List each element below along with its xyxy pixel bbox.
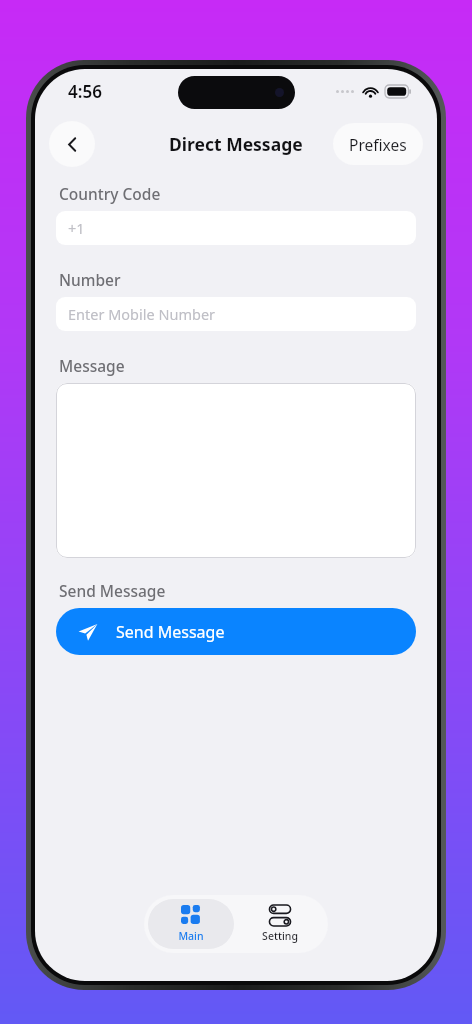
button[interactable]: Setting (238, 899, 322, 949)
button[interactable]: Main (148, 899, 234, 949)
staticText: Send Message (116, 621, 225, 643)
staticText: Number (59, 269, 121, 290)
staticText: Send Message (59, 580, 166, 601)
button[interactable]: Enter Mobile Number (56, 297, 416, 331)
staticText: +1 (68, 218, 85, 238)
staticText: Main (178, 929, 204, 943)
staticText: Prefixes (349, 134, 407, 155)
staticText: Setting (262, 929, 298, 943)
button[interactable] (56, 383, 416, 558)
button[interactable]: Prefixes (333, 123, 423, 165)
staticText: Message (59, 355, 125, 376)
staticText: Country Code (59, 183, 161, 204)
button[interactable]: Send Message (56, 608, 416, 655)
staticText: 4:56 (68, 80, 102, 103)
staticText: Enter Mobile Number (68, 304, 216, 324)
button[interactable]: +1 (56, 211, 416, 245)
staticText: Direct Message (169, 132, 303, 156)
button[interactable]: Back (49, 121, 95, 167)
